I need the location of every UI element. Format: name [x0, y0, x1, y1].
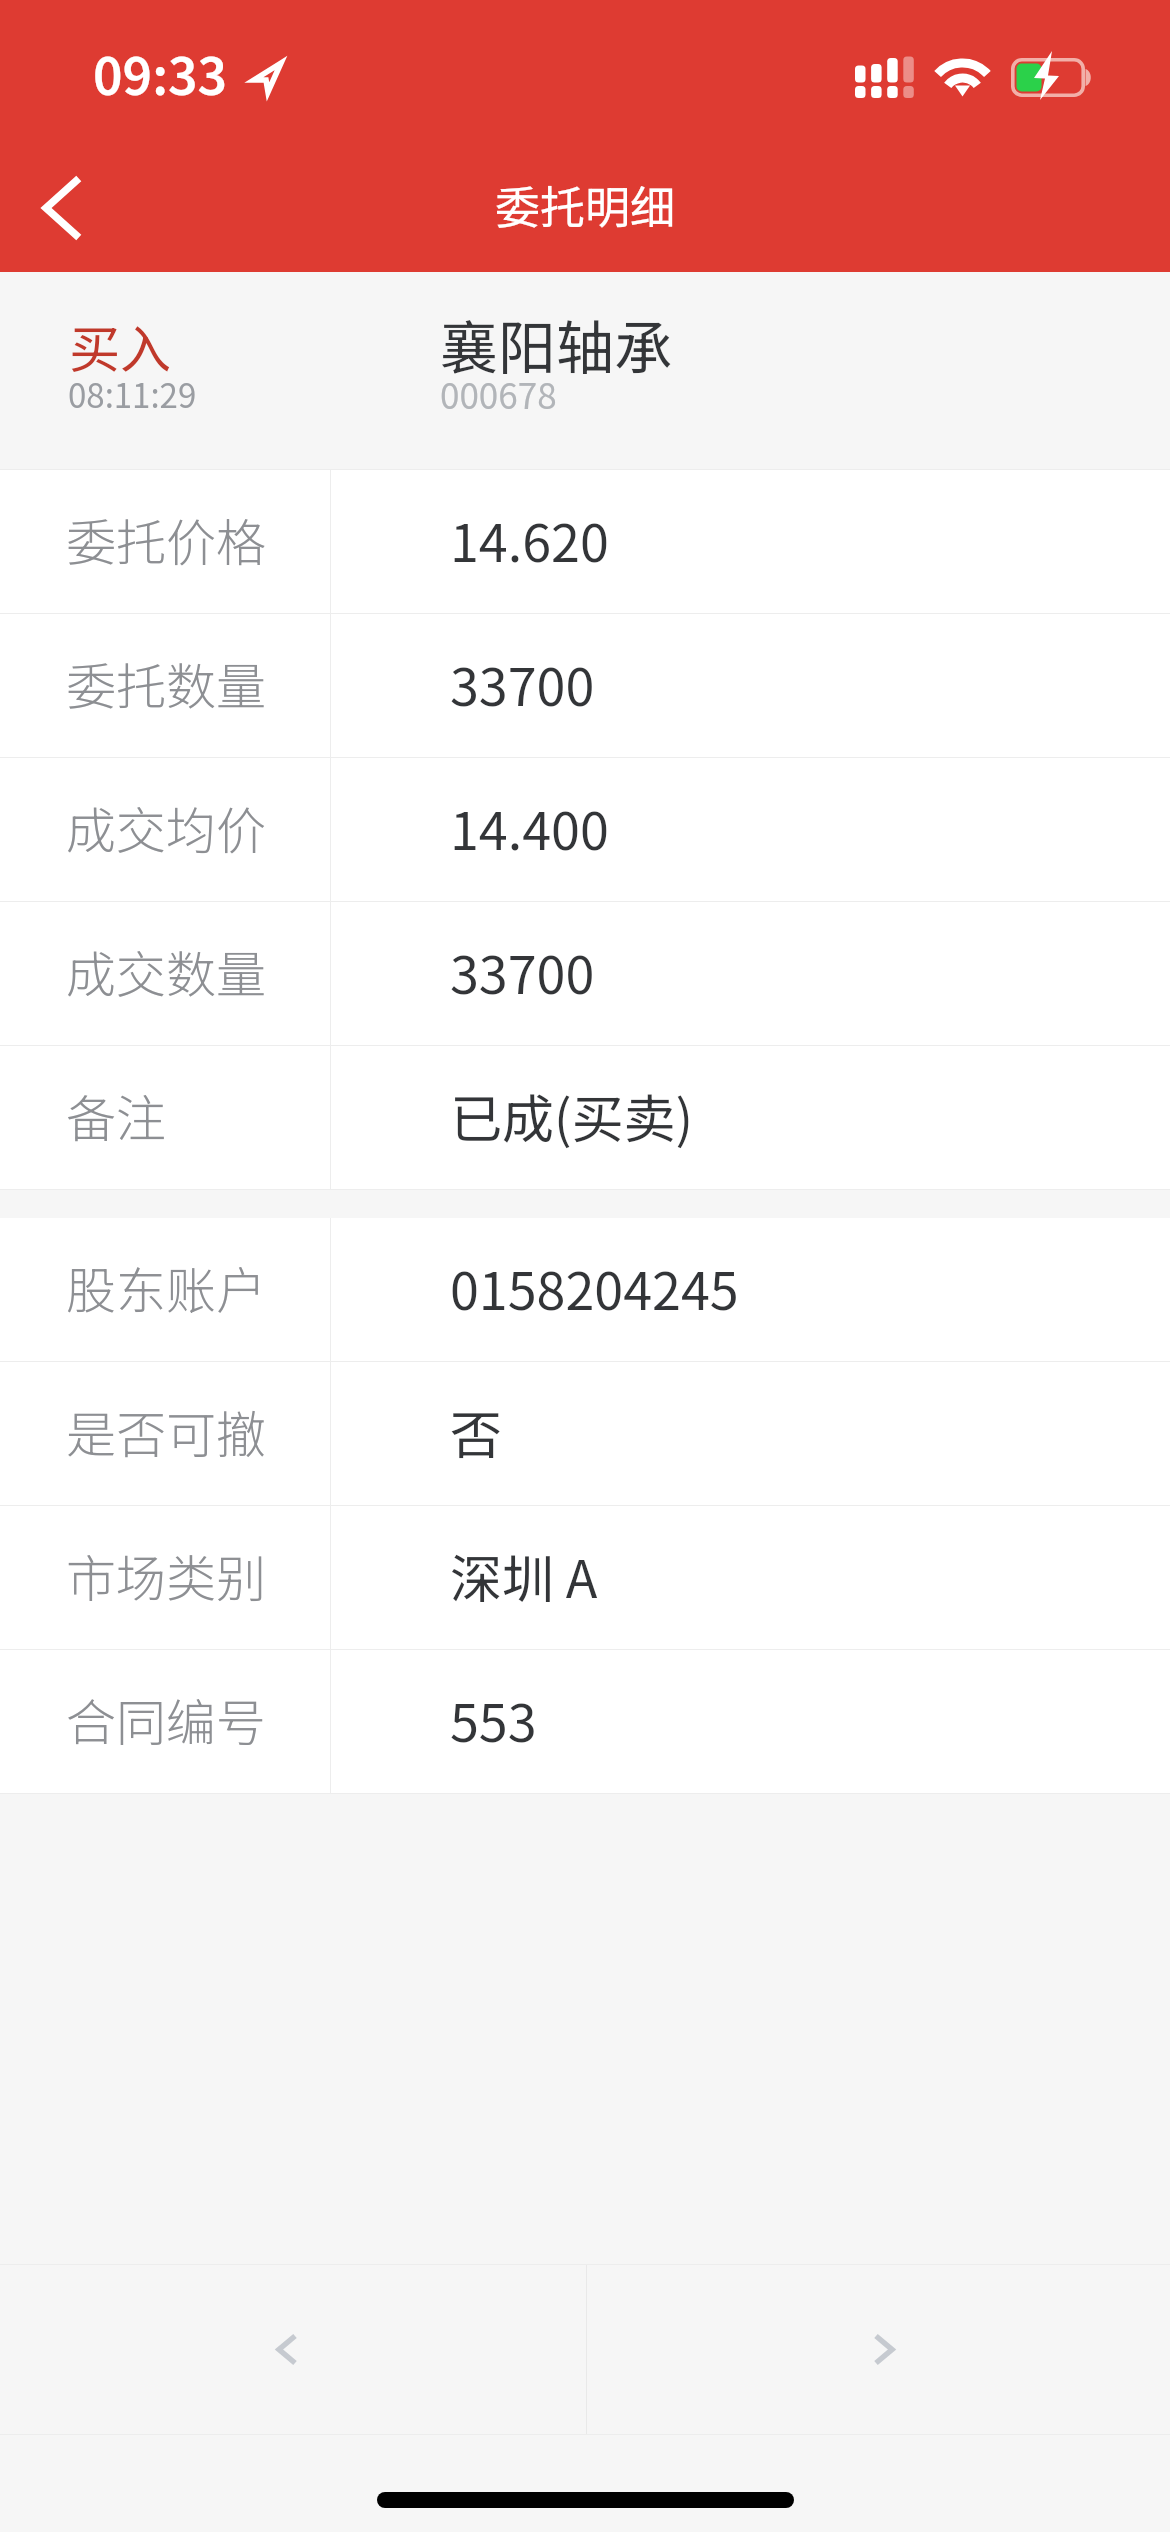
staticText: 成交均价	[66, 791, 266, 863]
staticText: 33700	[450, 934, 595, 1009]
button[interactable]: 委托价格	[0, 470, 1170, 613]
staticText: 市场类别	[66, 1539, 266, 1611]
button[interactable]: 市场类别	[0, 1506, 1170, 1649]
staticText: 深圳 A	[450, 1538, 598, 1613]
staticText: 委托数量	[66, 647, 266, 719]
staticText: 14.400	[450, 790, 609, 865]
staticText: 备注	[66, 1079, 166, 1151]
button[interactable]: 备注	[0, 1046, 1170, 1189]
staticText: 08:11:29	[68, 370, 197, 418]
staticText: 襄阳轴承	[440, 302, 673, 386]
button[interactable]: 成交均价	[0, 758, 1170, 901]
staticText: 0158204245	[450, 1250, 739, 1325]
staticText: 09:33	[93, 36, 228, 110]
staticText: 股东账户	[66, 1251, 266, 1323]
staticText: 买入	[69, 309, 172, 383]
staticText: 否	[450, 1394, 503, 1469]
staticText: 000678	[440, 368, 557, 419]
button[interactable]: 委托数量	[0, 614, 1170, 757]
staticText: 是否可撤	[66, 1395, 266, 1467]
staticText: 已成(买卖)	[450, 1078, 694, 1153]
staticText: 33700	[450, 646, 595, 721]
button[interactable]: 股东账户	[0, 1218, 1170, 1361]
staticText: 委托明细	[495, 172, 676, 237]
button[interactable]: 成交数量	[0, 902, 1170, 1045]
button[interactable]: 合同编号	[0, 1650, 1170, 1793]
staticText: 553	[450, 1682, 537, 1757]
button[interactable]: Back	[5, 152, 117, 264]
staticText: 成交数量	[66, 935, 266, 1007]
staticText: 14.620	[450, 502, 609, 577]
button[interactable]: 是否可撤	[0, 1362, 1170, 1505]
staticText: 委托价格	[66, 503, 266, 575]
staticText: 合同编号	[66, 1683, 266, 1755]
